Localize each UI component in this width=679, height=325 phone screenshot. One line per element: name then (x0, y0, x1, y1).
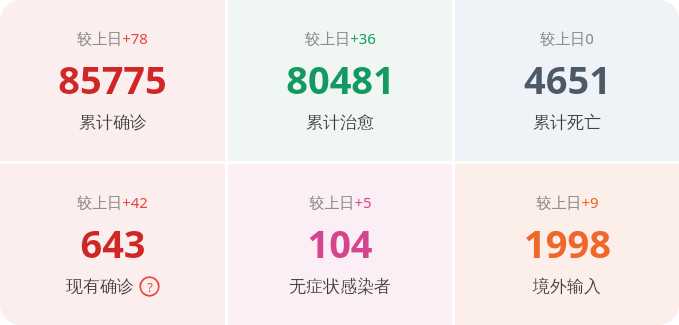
staticText: 1998 (524, 217, 611, 269)
button[interactable]: 较上日+42 (0, 164, 225, 325)
staticText: 较上日+36 (305, 28, 376, 48)
staticText: 104 (307, 217, 373, 269)
staticText: 643 (80, 217, 146, 269)
staticText: 较上日+9 (536, 192, 599, 212)
button[interactable]: 较上日+78 (0, 0, 225, 161)
button[interactable]: 较上日+5 (228, 164, 452, 325)
staticText: 较上日+42 (77, 192, 148, 212)
staticText: 4651 (524, 53, 611, 105)
staticText: 累计死亡 (533, 112, 601, 133)
staticText: 85775 (58, 53, 167, 105)
button[interactable]: 说明 (139, 276, 160, 297)
button[interactable]: 较上日+36 (228, 0, 452, 161)
button[interactable]: 较上日0 (455, 0, 679, 161)
staticText: 累计确诊 (79, 112, 147, 133)
staticText: 累计治愈 (306, 112, 374, 133)
staticText: 较上日+5 (309, 192, 372, 212)
staticText: 现有确诊 (66, 276, 134, 297)
staticText: 80481 (286, 53, 395, 105)
staticText: 无症状感染者 (289, 276, 391, 297)
staticText: 较上日+78 (77, 28, 148, 48)
staticText: ? (147, 278, 153, 296)
staticText: 境外输入 (533, 276, 601, 297)
button[interactable]: 较上日+9 (455, 164, 679, 325)
staticText: 较上日0 (540, 28, 594, 48)
